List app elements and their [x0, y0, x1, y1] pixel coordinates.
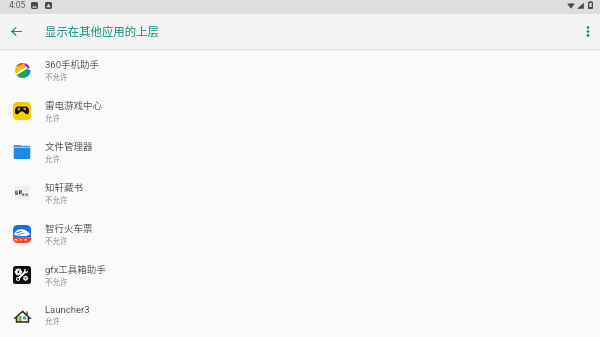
staticText: 不允许 — [45, 194, 68, 205]
staticText: gfx工具箱助手 — [45, 262, 106, 276]
staticText: 不允许 — [45, 235, 68, 246]
button[interactable]: 知轩藏书 — [0, 174, 600, 215]
staticText: 不允许 — [45, 276, 68, 287]
button[interactable]: 360手机助手 — [0, 51, 600, 92]
staticText: 允许 — [45, 153, 60, 164]
button[interactable]: 智行火车票 — [0, 215, 600, 256]
staticText: 雷电游戏中心 — [45, 98, 103, 112]
button[interactable]: 雷电游戏中心 — [0, 92, 600, 133]
staticText: 知轩藏书 — [45, 180, 84, 194]
staticText: 文件管理器 — [45, 139, 93, 153]
button[interactable]: gfx工具箱助手 — [0, 256, 600, 297]
staticText: 显示在其他应用的上层 — [45, 23, 159, 40]
button[interactable]: 文件管理器 — [0, 133, 600, 174]
button[interactable]: Launcher3 — [0, 297, 600, 337]
staticText: Launcher3 — [45, 304, 90, 315]
button[interactable]: More options — [576, 14, 600, 49]
button[interactable]: Back — [0, 14, 33, 49]
staticText: 不允许 — [45, 71, 68, 82]
staticText: 允许 — [45, 315, 60, 326]
staticText: 360手机助手 — [45, 57, 100, 71]
staticText: 允许 — [45, 112, 60, 123]
staticText: 4:05 — [9, 0, 26, 10]
staticText: 智行火车票 — [45, 221, 93, 235]
